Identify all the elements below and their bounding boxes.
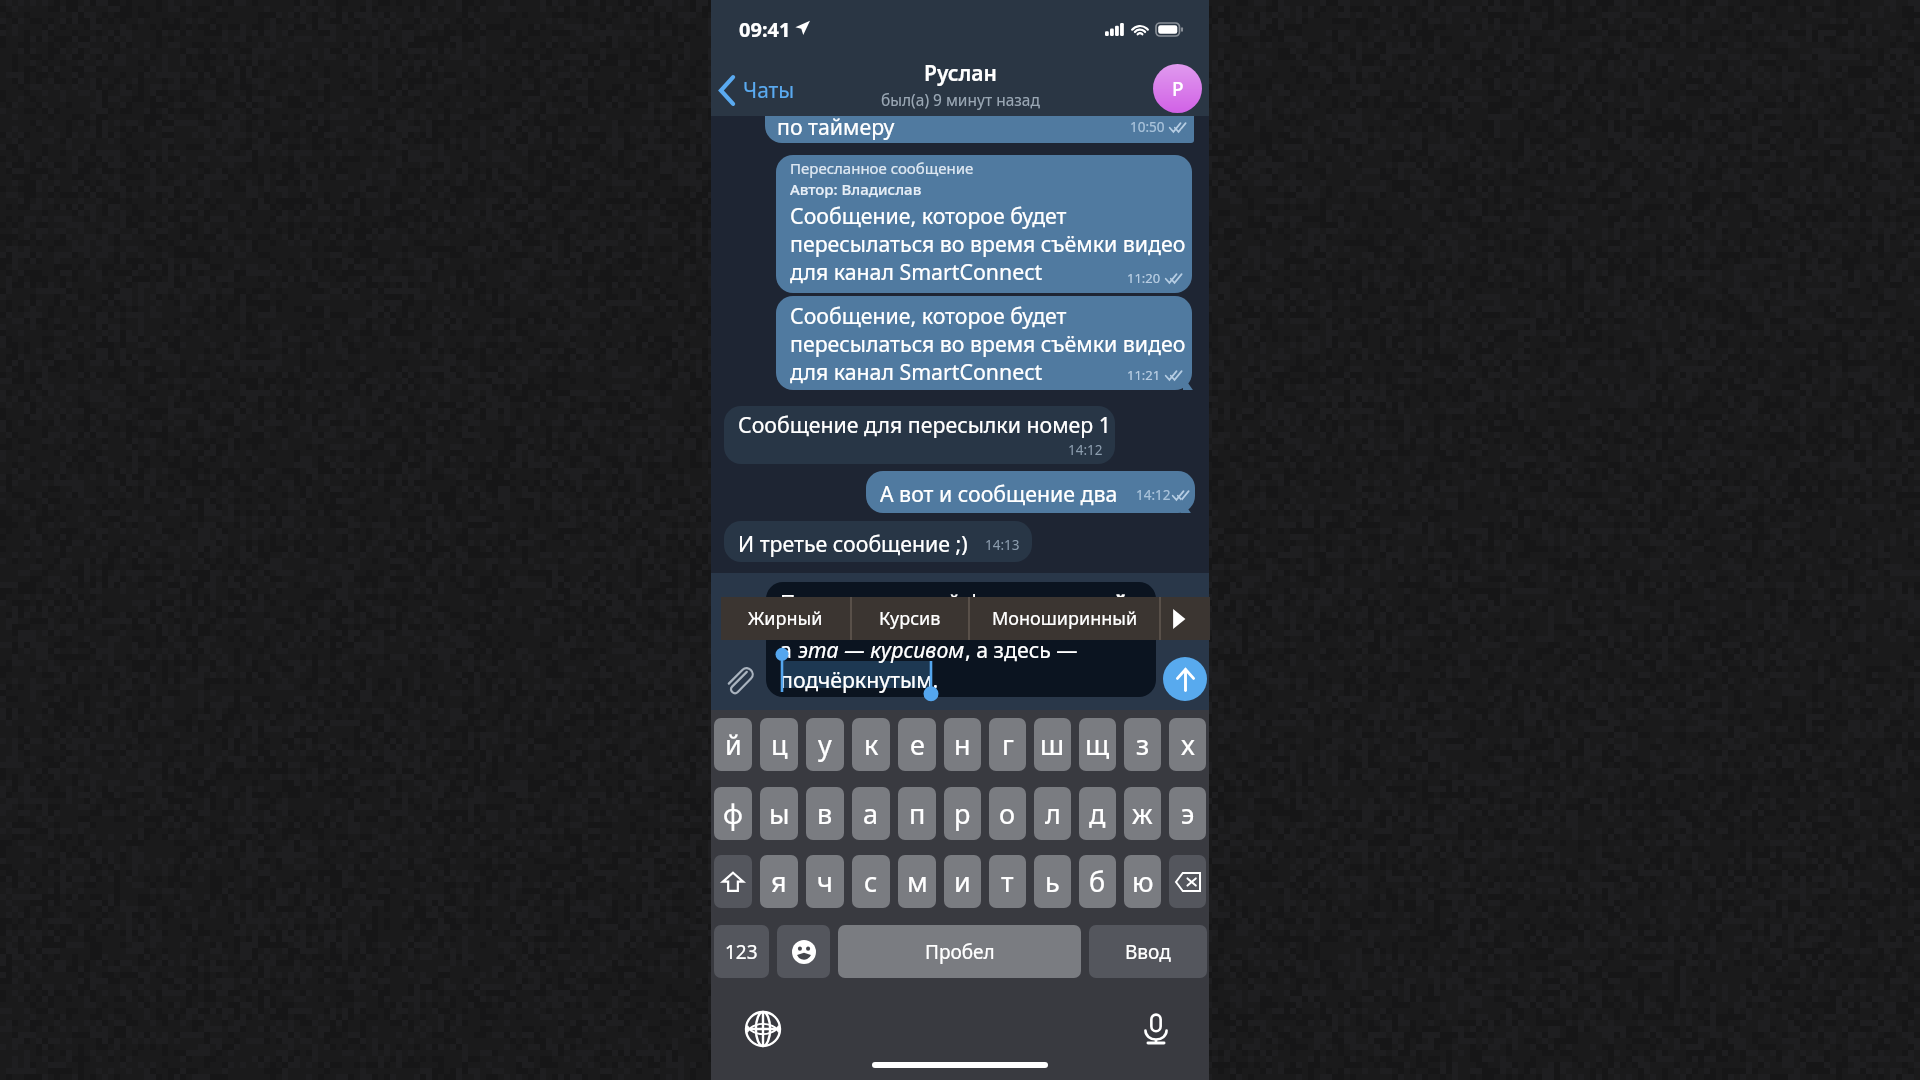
button[interactable]: п [898, 787, 936, 840]
button[interactable]: А вот и сообщение два [866, 471, 1195, 513]
staticText: 14:12 [1136, 486, 1171, 504]
button[interactable]: Применим к этой фразе [766, 582, 1156, 697]
button[interactable]: Прикрепить [720, 661, 758, 699]
staticText: л [1045, 795, 1061, 832]
staticText: и [954, 863, 971, 900]
button[interactable]: ц [760, 718, 798, 771]
button[interactable]: и [944, 855, 981, 908]
button[interactable]: ф [714, 787, 752, 840]
staticText: Ввод [1125, 939, 1171, 965]
button[interactable]: Пробел [838, 925, 1081, 978]
button[interactable]: Сообщение для пересылки номер 1 [724, 406, 1115, 464]
staticText: о [999, 795, 1016, 832]
staticText: Сообщение для пересылки номер 1 [738, 410, 1111, 439]
staticText: г [1002, 726, 1014, 763]
button[interactable]: л [1034, 787, 1071, 840]
staticText: б [1089, 863, 1106, 900]
staticText: 10:50 [1130, 118, 1165, 136]
staticText: у [818, 726, 832, 763]
button[interactable]: Пересланное сообщение [776, 155, 1192, 293]
staticText: а [863, 795, 879, 832]
button[interactable]: ы [760, 787, 798, 840]
staticText: т [1001, 863, 1014, 900]
button[interactable]: з [1124, 718, 1161, 771]
button[interactable]: Ещё [1161, 597, 1210, 640]
button[interactable]: к [852, 718, 890, 771]
button[interactable]: Эмодзи [777, 925, 830, 978]
staticText: Жирный [748, 606, 823, 631]
button[interactable]: е [898, 718, 936, 771]
staticText: с [864, 863, 878, 900]
button[interactable]: 123 [714, 925, 769, 978]
staticText: щ [1085, 726, 1110, 763]
button[interactable]: по таймеру [765, 100, 1194, 143]
staticText: й [725, 726, 742, 763]
staticText: Моноширинный [992, 606, 1138, 631]
staticText: жирный [1035, 588, 1128, 617]
button[interactable]: й [714, 718, 752, 771]
button[interactable]: Моноширинный [970, 597, 1159, 640]
button[interactable]: а [852, 787, 890, 840]
button[interactable]: Shift [714, 855, 752, 908]
button[interactable]: б [1079, 855, 1116, 908]
staticText: Сообщение, которое будет пересылаться во… [790, 201, 1186, 286]
button[interactable]: Сменить язык [743, 1009, 783, 1049]
staticText: 14:12 [1068, 441, 1103, 459]
button[interactable]: Жирный [721, 597, 850, 640]
staticText: 14:13 [985, 536, 1020, 554]
staticText: Чаты [743, 76, 795, 105]
button[interactable]: Чаты [715, 70, 799, 111]
staticText: Сообщение, которое будет пересылаться во… [790, 301, 1186, 386]
button[interactable]: о [989, 787, 1026, 840]
staticText: к [864, 726, 879, 763]
staticText: х [1181, 726, 1195, 763]
button[interactable]: Отправить [1163, 657, 1207, 701]
staticText: п [909, 795, 926, 832]
button[interactable]: Голосовой ввод [1136, 1009, 1176, 1049]
staticText: ф [723, 795, 743, 832]
button[interactable]: э [1169, 787, 1206, 840]
staticText: в [817, 795, 833, 832]
staticText: ж [1132, 795, 1153, 832]
button[interactable]: ч [806, 855, 844, 908]
button[interactable]: д [1079, 787, 1116, 840]
staticText: 123 [725, 939, 758, 965]
button[interactable]: я [760, 855, 798, 908]
button[interactable]: х [1169, 718, 1206, 771]
button[interactable]: Удалить [1169, 855, 1206, 908]
staticText: Пробел [925, 939, 995, 965]
staticText: м [907, 863, 928, 900]
staticText: ч [817, 863, 833, 900]
button[interactable]: Профиль [1153, 64, 1202, 113]
staticText: был(а) 9 минут назад [881, 89, 1040, 110]
button[interactable]: т [989, 855, 1026, 908]
button[interactable]: р [944, 787, 981, 840]
button[interactable]: н [944, 718, 981, 771]
button[interactable]: г [989, 718, 1026, 771]
staticText: 11:21 [1127, 366, 1161, 384]
button[interactable]: ь [1034, 855, 1071, 908]
staticText: 09:41 [739, 16, 791, 43]
staticText: Р [1172, 76, 1184, 102]
staticText: , а здесь — [965, 635, 1078, 664]
button[interactable]: в [806, 787, 844, 840]
button[interactable]: ю [1124, 855, 1161, 908]
button[interactable]: с [852, 855, 890, 908]
button[interactable]: Курсив [852, 597, 968, 640]
staticText: а [780, 635, 798, 664]
staticText: подчёркнутым. [780, 665, 939, 694]
staticText: эта — курсивом [798, 635, 965, 664]
button[interactable]: Ввод [1089, 925, 1207, 978]
button[interactable]: ж [1124, 787, 1161, 840]
button[interactable]: ш [1034, 718, 1071, 771]
staticText: 11:20 [1127, 269, 1161, 287]
staticText: е [910, 726, 925, 763]
staticText: Пересланное сообщение [790, 158, 974, 178]
button[interactable]: м [898, 855, 936, 908]
button[interactable]: Сообщение, которое будет пересылаться во… [776, 296, 1192, 390]
staticText: ш [1040, 726, 1065, 763]
button[interactable]: щ [1079, 718, 1116, 771]
staticText: э [1181, 795, 1195, 832]
button[interactable]: у [806, 718, 844, 771]
button[interactable]: И третье сообщение ;) [724, 521, 1032, 562]
